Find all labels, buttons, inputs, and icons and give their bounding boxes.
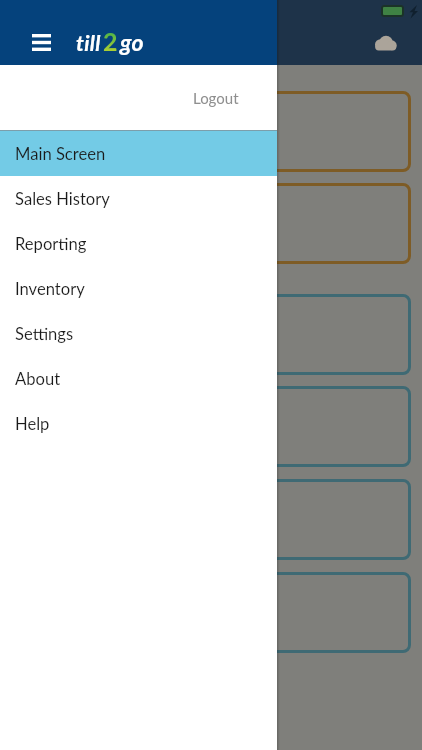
button[interactable] xyxy=(11,572,411,653)
staticText: 2 xyxy=(103,26,118,56)
staticText: Logout xyxy=(193,89,239,107)
staticText: Help xyxy=(15,414,50,434)
staticText: go xyxy=(120,28,144,56)
button[interactable] xyxy=(11,183,411,264)
button[interactable]: Help xyxy=(0,401,277,446)
button[interactable] xyxy=(11,91,411,172)
staticText: till xyxy=(76,30,101,56)
button[interactable]: Open navigation menu xyxy=(20,20,63,65)
button[interactable]: Main Screen xyxy=(0,131,277,176)
button[interactable]: Sales History xyxy=(0,176,277,221)
staticText: Main Screen xyxy=(15,144,106,164)
staticText: About xyxy=(15,369,61,389)
button[interactable] xyxy=(11,479,411,560)
button[interactable] xyxy=(11,386,411,467)
button[interactable]: About xyxy=(0,356,277,401)
staticText: Settings xyxy=(15,324,74,344)
button[interactable]: Inventory xyxy=(0,266,277,311)
button[interactable]: Reporting xyxy=(0,221,277,266)
button[interactable]: Settings xyxy=(0,311,277,356)
button[interactable]: Logout xyxy=(0,65,277,130)
staticText: Inventory xyxy=(15,279,85,299)
staticText: Sales History xyxy=(15,189,110,209)
other: Cloud sync xyxy=(374,35,398,52)
button[interactable] xyxy=(11,294,411,375)
staticText: Reporting xyxy=(15,234,87,254)
